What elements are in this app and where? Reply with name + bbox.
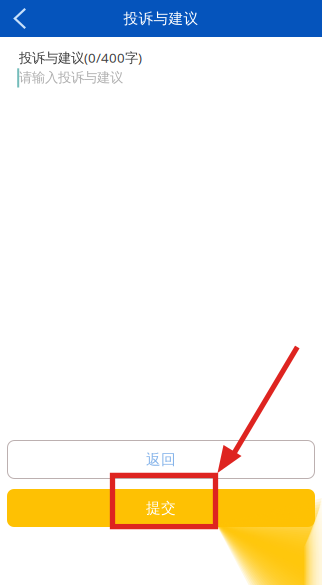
staticText: 请输入投诉与建议 (19, 69, 123, 86)
staticText: 投诉与建议(0/400字) (19, 49, 142, 66)
staticText: 投诉与建议 (123, 9, 198, 27)
button[interactable]: 提交 (7, 489, 315, 527)
button[interactable]: Back (0, 0, 40, 37)
button[interactable]: 返回 (7, 440, 315, 479)
staticText: 提交 (146, 499, 176, 517)
staticText: 返回 (146, 450, 176, 468)
